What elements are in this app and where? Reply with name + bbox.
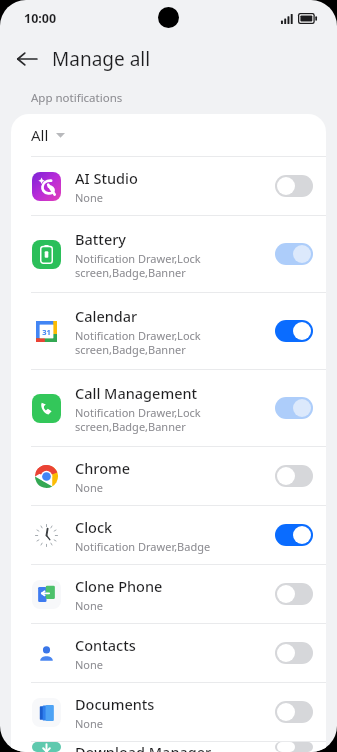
staticText: 10:00: [24, 10, 57, 27]
staticText: All: [31, 125, 49, 145]
button[interactable]: Battery: [11, 216, 326, 292]
staticText: Clock: [75, 517, 113, 537]
staticText: None: [75, 657, 104, 672]
button[interactable]: Documents: [11, 683, 326, 741]
staticText: Battery: [75, 229, 126, 249]
staticText: Calendar: [75, 306, 138, 326]
staticText: Documents: [75, 694, 155, 714]
staticText: None: [75, 716, 104, 731]
button[interactable]: Notification toggle: [275, 742, 313, 752]
button[interactable]: Download Manager: [11, 742, 326, 752]
staticText: Notification Drawer,Lock screen,Badge,Ba…: [75, 251, 201, 280]
staticText: AI Studio: [75, 168, 138, 188]
button[interactable]: Notification toggle: [275, 524, 313, 546]
button[interactable]: Chrome: [11, 447, 326, 505]
staticText: None: [75, 480, 104, 495]
button[interactable]: Clock: [11, 506, 326, 564]
staticText: 31: [42, 327, 51, 337]
button[interactable]: Notification toggle: [275, 243, 313, 265]
staticText: Manage all: [52, 46, 151, 72]
staticText: Notification Drawer,Badge: [75, 539, 211, 554]
button[interactable]: Notification toggle: [275, 465, 313, 487]
button[interactable]: Notification toggle: [275, 175, 313, 197]
staticText: Notification Drawer,Lock screen,Badge,Ba…: [75, 328, 201, 357]
button[interactable]: Notification toggle: [275, 397, 313, 419]
button[interactable]: Contacts: [11, 624, 326, 682]
button[interactable]: Notification toggle: [275, 642, 313, 664]
button[interactable]: Notification toggle: [275, 320, 313, 342]
button[interactable]: Clone Phone: [11, 565, 326, 623]
staticText: None: [75, 598, 104, 613]
button[interactable]: AI Studio: [11, 157, 326, 215]
button[interactable]: Call Management: [11, 370, 326, 446]
button[interactable]: Notification toggle: [275, 701, 313, 723]
staticText: Chrome: [75, 458, 131, 478]
button[interactable]: 31: [11, 293, 326, 369]
staticText: None: [75, 190, 104, 205]
staticText: Contacts: [75, 635, 136, 655]
button[interactable]: All: [11, 114, 326, 156]
button[interactable]: Notification toggle: [275, 583, 313, 605]
staticText: Clone Phone: [75, 576, 163, 596]
staticText: Download Manager: [75, 742, 212, 752]
staticText: Call Management: [75, 383, 198, 403]
staticText: Notification Drawer,Lock screen,Badge,Ba…: [75, 405, 201, 434]
staticText: App notifications: [31, 90, 123, 106]
button[interactable]: Back: [8, 40, 46, 78]
